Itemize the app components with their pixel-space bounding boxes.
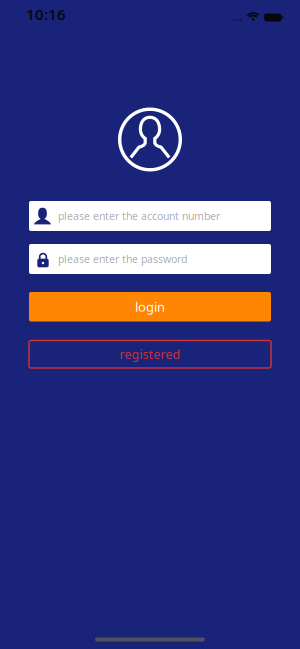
button[interactable]: registered: [29, 340, 271, 368]
staticText: 10:16: [26, 4, 66, 24]
staticText: please enter the account number: [58, 209, 220, 223]
button[interactable]: please enter the password: [29, 244, 271, 274]
button[interactable]: please enter the account number: [29, 201, 271, 231]
staticText: please enter the password: [58, 252, 187, 266]
staticText: registered: [119, 346, 180, 363]
button[interactable]: login: [29, 292, 271, 321]
staticText: login: [135, 298, 165, 316]
